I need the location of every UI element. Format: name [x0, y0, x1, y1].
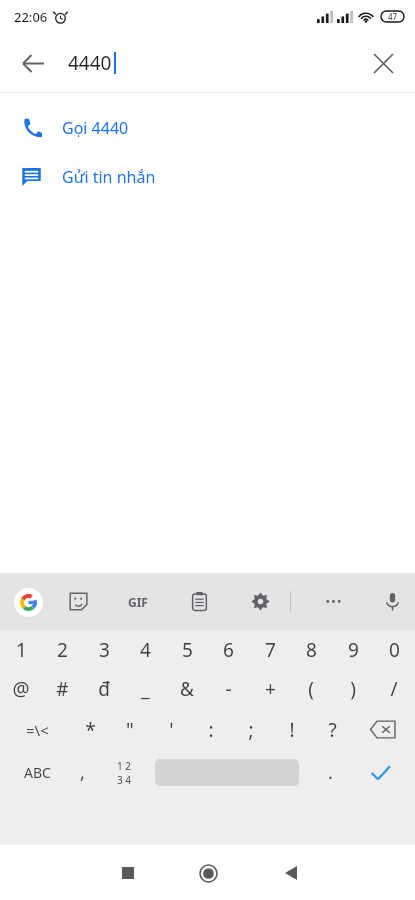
- staticText: ': [169, 717, 174, 743]
- button[interactable]: Gọi 4440: [0, 103, 415, 152]
- staticText: 5: [182, 637, 193, 663]
- staticText: /: [390, 676, 398, 702]
- button[interactable]: .: [310, 750, 350, 795]
- staticText: _: [141, 676, 150, 702]
- staticText: ;: [248, 717, 254, 743]
- staticText: .: [328, 760, 333, 785]
- staticText: 6: [223, 637, 234, 663]
- staticText: 22:06: [14, 8, 48, 26]
- button[interactable]: Clear: [359, 39, 407, 87]
- staticText: Gửi tin nhắn: [62, 166, 156, 188]
- button[interactable]: Clipboard: [179, 573, 219, 630]
- button[interactable]: @: [1, 669, 41, 709]
- staticText: ): [350, 676, 356, 702]
- staticText: đ: [98, 676, 110, 702]
- button[interactable]: 5: [167, 630, 207, 669]
- staticText: #: [56, 676, 69, 702]
- button[interactable]: #: [42, 669, 82, 709]
- button[interactable]: 1: [1, 630, 41, 669]
- button[interactable]: :: [191, 709, 231, 750]
- button[interactable]: *: [70, 709, 110, 750]
- button[interactable]: Voice input: [372, 573, 412, 630]
- button[interactable]: More options: [313, 573, 353, 630]
- button[interactable]: Settings: [240, 573, 280, 630]
- button[interactable]: /: [374, 669, 414, 709]
- button[interactable]: ABC: [10, 750, 64, 795]
- button[interactable]: (: [291, 669, 331, 709]
- button[interactable]: ": [110, 709, 150, 750]
- staticText: @: [12, 676, 30, 702]
- button[interactable]: Stickers: [58, 573, 98, 630]
- staticText: 1: [16, 637, 27, 663]
- button[interactable]: 9: [333, 630, 373, 669]
- staticText: (: [308, 676, 314, 702]
- button[interactable]: 6: [208, 630, 248, 669]
- button[interactable]: 3: [84, 630, 124, 669]
- button[interactable]: Gửi tin nhắn: [0, 152, 415, 201]
- button[interactable]: ): [333, 669, 373, 709]
- staticText: 8: [306, 637, 317, 663]
- button[interactable]: 7: [250, 630, 290, 669]
- button[interactable]: Back: [8, 39, 56, 87]
- staticText: 2: [57, 637, 68, 663]
- button[interactable]: GIF: [120, 582, 156, 622]
- button[interactable]: 8: [291, 630, 331, 669]
- button[interactable]: _: [125, 669, 165, 709]
- button[interactable]: Home: [184, 849, 232, 897]
- button[interactable]: ,: [62, 750, 102, 795]
- staticText: 9: [348, 637, 359, 663]
- button[interactable]: ;: [231, 709, 271, 750]
- staticText: Gọi 4440: [62, 117, 129, 139]
- button[interactable]: 0: [374, 630, 414, 669]
- staticText: 4: [140, 637, 151, 663]
- button[interactable]: 4: [125, 630, 165, 669]
- button[interactable]: ?: [312, 709, 352, 750]
- staticText: 1 2: [117, 759, 132, 773]
- button[interactable]: =\<: [10, 709, 64, 750]
- staticText: 7: [265, 637, 276, 663]
- staticText: ?: [328, 717, 337, 743]
- button[interactable]: !: [272, 709, 312, 750]
- button[interactable]: -: [208, 669, 248, 709]
- button[interactable]: &: [167, 669, 207, 709]
- staticText: =\<: [26, 720, 49, 740]
- button[interactable]: Recent apps: [104, 849, 152, 897]
- staticText: ": [126, 717, 134, 743]
- button[interactable]: đ: [84, 669, 124, 709]
- button[interactable]: +: [250, 669, 290, 709]
- staticText: :: [208, 717, 214, 743]
- staticText: +: [265, 676, 276, 702]
- staticText: 0: [389, 637, 400, 663]
- button[interactable]: Enter: [357, 750, 403, 795]
- staticText: 3: [99, 637, 110, 663]
- staticText: *: [85, 717, 96, 743]
- button[interactable]: Back: [267, 849, 315, 897]
- button[interactable]: Google: [8, 582, 48, 622]
- staticText: !: [289, 717, 295, 743]
- staticText: ABC: [24, 763, 51, 782]
- staticText: &: [180, 676, 194, 702]
- staticText: 3 4: [117, 773, 132, 787]
- staticText: GIF: [128, 594, 148, 610]
- button[interactable]: ': [151, 709, 191, 750]
- button[interactable]: Backspace: [359, 709, 407, 750]
- button[interactable]: 2: [42, 630, 82, 669]
- staticText: ,: [80, 760, 85, 785]
- staticText: 4440: [68, 50, 112, 76]
- staticText: 47: [388, 11, 398, 22]
- staticText: -: [225, 676, 232, 702]
- button[interactable]: Numbers: [104, 750, 144, 795]
